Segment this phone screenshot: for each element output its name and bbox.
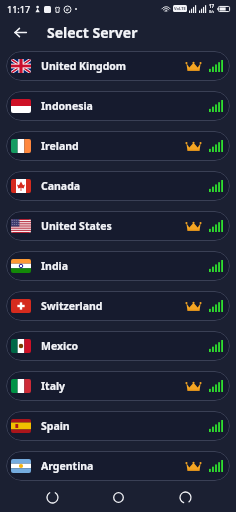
button[interactable]: Switzerland: [6, 291, 230, 321]
button[interactable]: Canada: [6, 171, 230, 201]
button[interactable]: India: [6, 251, 230, 281]
staticText: 11:17: [7, 3, 31, 15]
staticText: Ireland: [41, 139, 79, 153]
staticText: Canada: [41, 179, 81, 193]
staticText: India: [41, 259, 68, 273]
button[interactable]: Ireland: [6, 131, 230, 161]
button[interactable]: United Kingdom: [6, 51, 230, 81]
staticText: Indonesia: [41, 99, 93, 113]
staticText: 17: [209, 3, 215, 9]
staticText: Argentina: [41, 459, 94, 473]
button[interactable]: Italy: [6, 371, 230, 401]
button[interactable]: Spain: [6, 411, 230, 441]
staticText: Italy: [41, 379, 66, 393]
button[interactable]: Back: [8, 20, 32, 44]
staticText: United Kingdom: [41, 59, 127, 73]
staticText: VoLTE: [174, 6, 186, 11]
staticText: Spain: [41, 419, 70, 433]
button[interactable]: Indonesia: [6, 91, 230, 121]
button[interactable]: Recent apps: [170, 482, 200, 512]
staticText: Switzerland: [41, 299, 103, 313]
button[interactable]: Back: [37, 482, 67, 512]
button[interactable]: United States: [6, 211, 230, 241]
staticText: Select Server: [47, 23, 138, 42]
button[interactable]: Mexico: [6, 331, 230, 361]
staticText: B/s: [209, 9, 215, 14]
button[interactable]: Argentina: [6, 451, 230, 481]
button[interactable]: Home: [103, 482, 133, 512]
staticText: Mexico: [41, 339, 79, 353]
staticText: United States: [41, 219, 112, 233]
